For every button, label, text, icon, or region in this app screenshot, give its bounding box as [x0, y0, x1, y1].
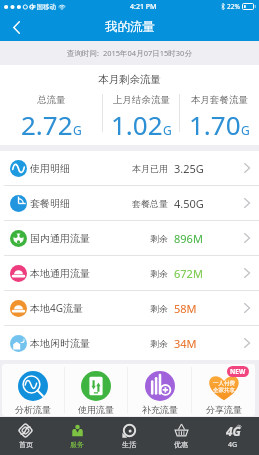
staticText: 查询时间: 2015年04月07日15时30分 [67, 48, 192, 58]
staticText: 服务 [70, 440, 84, 449]
button[interactable]: 服务 [51, 417, 103, 455]
staticText: 套餐明细 [30, 197, 70, 210]
staticText: 总流量 [37, 94, 66, 106]
staticText: 国内通用流量 [30, 232, 90, 245]
staticText: G [73, 122, 82, 138]
button[interactable]: 一人付费 [192, 364, 255, 416]
staticText: 2.72 [21, 107, 73, 141]
staticText: 剩余 [150, 303, 168, 314]
staticText: 22% [227, 2, 240, 11]
staticText: G [241, 122, 250, 138]
staticText: 4G [228, 440, 238, 450]
button[interactable]: 首页 [0, 417, 51, 455]
staticText: 优惠 [174, 440, 188, 449]
staticText: 本地闲时流量 [30, 337, 90, 350]
button[interactable]: 使用明细 [0, 151, 259, 185]
staticText: 生活 [122, 440, 136, 449]
staticText: 本月剩余流量 [0, 73, 259, 86]
staticText: 分享流量 [206, 404, 242, 415]
button[interactable]: 分析流量 [2, 364, 64, 416]
button[interactable]: 补充流量 [128, 364, 191, 416]
staticText: 使用流量 [78, 404, 114, 415]
staticText: 剩余 [150, 268, 168, 279]
staticText: G [163, 122, 172, 138]
staticText: 中国移动 [30, 3, 56, 11]
staticText: 我的流量 [105, 19, 155, 35]
button[interactable]: 优惠 [155, 417, 207, 455]
staticText: 全家共享 [213, 387, 235, 394]
button[interactable]: 本地4G流量 [0, 291, 259, 325]
staticText: 套餐总量 [132, 198, 168, 209]
staticText: 一人付费 [213, 380, 235, 387]
staticText: 本月套餐流量 [191, 94, 248, 106]
staticText: 首页 [19, 440, 33, 449]
staticText: 1.02 [111, 107, 163, 141]
staticText: NEW [230, 367, 246, 376]
staticText: 本月已用 [132, 163, 168, 174]
staticText: 4:21 PM [130, 2, 157, 12]
button[interactable]: 国内通用流量 [0, 221, 259, 255]
staticText: 4.50G [174, 196, 204, 211]
button[interactable]: Back [0, 13, 32, 41]
staticText: 896M [174, 231, 203, 246]
staticText: 本地通用流量 [30, 267, 90, 280]
staticText: 3.25G [174, 161, 204, 176]
staticText: 1.70 [189, 107, 241, 141]
staticText: 剩余 [150, 233, 168, 244]
staticText: 58M [174, 301, 197, 316]
staticText: 34M [174, 336, 197, 351]
staticText: 剩余 [150, 338, 168, 349]
staticText: 使用明细 [30, 162, 70, 175]
staticText: 本地4G流量 [30, 301, 83, 315]
button[interactable]: 本地通用流量 [0, 256, 259, 290]
button[interactable]: 套餐明细 [0, 186, 259, 220]
button[interactable]: 使用流量 [65, 364, 127, 416]
staticText: 4G [226, 423, 241, 438]
button[interactable]: 生活 [103, 417, 155, 455]
staticText: 上月结余流量 [113, 94, 170, 106]
staticText: 672M [174, 266, 203, 281]
button[interactable]: 4G [207, 417, 259, 455]
button[interactable]: 本地闲时流量 [0, 326, 259, 360]
staticText: 补充流量 [142, 404, 178, 415]
staticText: 分析流量 [15, 404, 51, 415]
